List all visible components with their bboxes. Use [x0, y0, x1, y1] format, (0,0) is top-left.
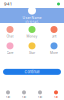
staticText: Continue — [24, 70, 39, 74]
button[interactable]: More — [46, 42, 62, 55]
button[interactable]: Tab — [32, 90, 48, 99]
staticText: Star — [29, 51, 35, 55]
staticText: More — [50, 51, 58, 55]
staticText: Chat — [6, 34, 13, 38]
staticText: Tab — [21, 95, 26, 99]
staticText: 9:41 — [4, 2, 12, 6]
button[interactable]: Continue — [3, 69, 61, 75]
staticText: User Name — [22, 16, 41, 20]
button[interactable]: Star — [24, 42, 40, 55]
staticText: Tab — [37, 95, 42, 99]
button[interactable]: Tab — [0, 90, 16, 99]
staticText: Care — [6, 51, 13, 55]
button[interactable]: Tab — [48, 90, 64, 99]
staticText: Gift — [51, 34, 56, 38]
button[interactable]: Money — [24, 26, 40, 38]
staticText: ID 12345 — [25, 21, 38, 24]
button[interactable]: Gift — [46, 26, 62, 38]
staticText: Tab — [53, 95, 58, 99]
staticText: Tab — [5, 95, 10, 99]
button[interactable]: Chat — [2, 26, 18, 38]
staticText: Money — [26, 34, 37, 38]
button[interactable]: Tab — [16, 90, 32, 99]
button[interactable]: Care — [2, 42, 18, 55]
